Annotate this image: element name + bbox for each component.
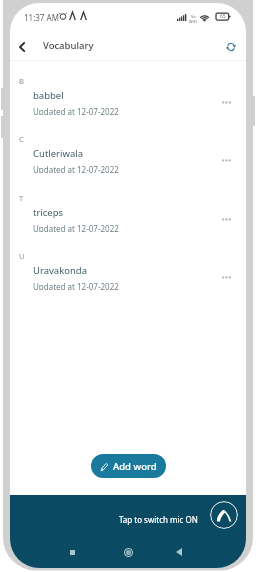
staticText: Updated at 12-07-2022 — [33, 281, 119, 290]
staticText: Vo — [191, 14, 196, 19]
staticText: Uravakonda — [33, 264, 88, 277]
staticText: Updated at 12-07-2022 — [33, 164, 119, 173]
button[interactable]: Home — [116, 540, 140, 564]
button[interactable]: Add word — [91, 454, 166, 478]
button[interactable]: Uravakonda — [10, 264, 246, 290]
button[interactable]: Back — [167, 540, 191, 564]
button[interactable]: More options — [216, 267, 236, 287]
staticText: 65 — [220, 13, 226, 20]
staticText: Cutleriwala — [33, 147, 84, 160]
button[interactable]: Back — [10, 35, 33, 58]
button[interactable]: Cutleriwala — [10, 147, 246, 173]
staticText: WiFi — [189, 19, 197, 24]
staticText: T — [19, 193, 24, 203]
staticText: Vocabulary — [43, 39, 94, 52]
button[interactable]: More options — [216, 92, 236, 112]
button[interactable]: More options — [216, 150, 236, 170]
button[interactable]: More options — [216, 209, 236, 229]
button[interactable]: babbel — [10, 89, 246, 115]
staticText: babbel — [33, 89, 64, 102]
button[interactable]: Switch microphone on — [210, 501, 238, 529]
button[interactable]: Refresh — [219, 35, 242, 58]
staticText: B — [19, 76, 24, 86]
staticText: Add word — [113, 460, 157, 473]
button[interactable]: Recents — [60, 540, 84, 564]
staticText: triceps — [33, 206, 64, 219]
staticText: U — [19, 251, 25, 261]
staticText: Updated at 12-07-2022 — [33, 106, 119, 115]
staticText: 11:37 AM — [24, 12, 59, 23]
staticText: C — [19, 134, 24, 144]
staticText: Updated at 12-07-2022 — [33, 223, 119, 232]
button[interactable]: triceps — [10, 206, 246, 232]
staticText: Tap to switch mic ON — [119, 514, 198, 525]
